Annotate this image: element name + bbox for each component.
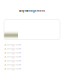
staticText: Settings row	[4, 47, 21, 50]
staticText: Settings row	[4, 67, 21, 70]
staticText: Settings row	[4, 51, 21, 54]
staticText: Settings row	[4, 55, 21, 58]
staticText: Easy Management	[19, 9, 45, 12]
staticText: Settings row	[4, 63, 21, 66]
staticText: Settings row	[4, 43, 21, 46]
staticText: Settings row	[4, 59, 21, 62]
